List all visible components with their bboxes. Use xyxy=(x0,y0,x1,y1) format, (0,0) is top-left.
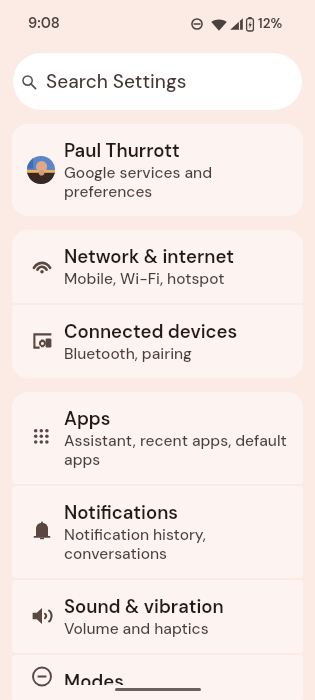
button[interactable]: Sound & vibration xyxy=(12,580,303,653)
staticText: Modes xyxy=(64,670,124,685)
button[interactable]: Connected devices xyxy=(12,305,303,378)
staticText: Bluetooth, pairing xyxy=(64,344,192,363)
staticText: Assistant, recent apps, default apps xyxy=(64,431,291,469)
staticText: Connected devices xyxy=(64,320,238,344)
staticText: Volume and haptics xyxy=(64,619,209,638)
button[interactable]: Notifications xyxy=(12,486,303,578)
staticText: Notification history, conversations xyxy=(64,525,291,563)
staticText: 9:08 xyxy=(28,14,60,33)
staticText: 12% xyxy=(258,15,283,33)
staticText: Mobile, Wi-Fi, hotspot xyxy=(64,269,225,288)
button[interactable]: Apps xyxy=(12,392,303,484)
button[interactable]: Modes xyxy=(12,655,303,700)
staticText: Google services and preferences xyxy=(64,163,287,201)
staticText: Paul Thurrott xyxy=(64,139,180,163)
staticText: Search Settings xyxy=(46,69,187,94)
button[interactable]: Paul Thurrott xyxy=(12,124,303,216)
staticText: Notifications xyxy=(64,501,179,525)
staticText: Network & internet xyxy=(64,245,235,269)
staticText: Apps xyxy=(64,407,111,431)
button[interactable]: Network & internet xyxy=(12,230,303,303)
staticText: Sound & vibration xyxy=(64,595,224,619)
button[interactable]: Search Settings xyxy=(13,53,302,110)
